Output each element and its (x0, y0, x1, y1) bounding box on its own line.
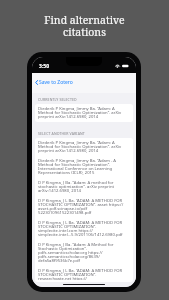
button[interactable]: D P Kingma, J Ba. “Adam: A Method for St… (35, 240, 133, 266)
button[interactable]: Diederik P Kingma, Jimmy Ba. “Adam: A Me… (35, 138, 133, 156)
staticText: Find alternative citations (44, 13, 125, 39)
staticText: 3:50 (39, 63, 49, 70)
button[interactable]: D P Kingma, J L Ba. “ADAM: A METHOD FOR … (35, 218, 133, 240)
button[interactable]: Diederik P Kingma, Jimmy Ba. “Adam - A M… (35, 156, 133, 178)
button[interactable]: D P Kingma, J L Ba. “ADAM: A METHOD FOR … (35, 266, 133, 282)
staticText: Diederik P Kingma, Jimmy Ba. “Adam - A M… (38, 158, 130, 176)
staticText: D P Kingma, J Ba. “Adam: A Method for St… (38, 242, 130, 264)
staticText: CURRENTLY SELECTED (38, 97, 77, 102)
staticText: D P Kingma, J L Ba. “ADAM: A METHOD FOR … (38, 220, 130, 238)
button[interactable]: Save to Zotero (32, 78, 77, 87)
staticText: D P Kingma, J L Ba. “ADAM: A METHOD FOR … (38, 198, 130, 216)
button[interactable]: D P Kingma, J L Ba. “ADAM: A METHOD FOR … (35, 196, 133, 218)
button[interactable]: D P Kingma, J Ba. “Adam: A method for st… (35, 178, 133, 196)
staticText: Diederik P Kingma, Jimmy Ba. “Adam: A Me… (38, 140, 130, 154)
staticText: SELECT ANOTHER VARIANT (38, 131, 85, 136)
staticText: D P Kingma, J Ba. “Adam: A method for st… (38, 180, 130, 194)
staticText: Save to Zotero (39, 79, 73, 86)
button[interactable]: Diederik P Kingma, Jimmy Ba. “Adam: A Me… (35, 104, 133, 122)
staticText: D P Kingma, J L Ba. “ADAM: A METHOD FOR … (38, 268, 130, 280)
staticText: Diederik P Kingma, Jimmy Ba. “Adam: A Me… (38, 106, 130, 120)
